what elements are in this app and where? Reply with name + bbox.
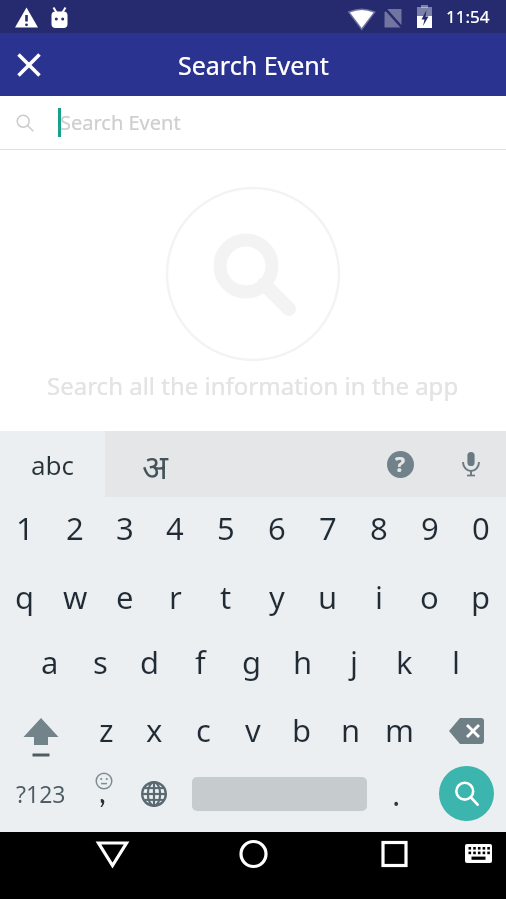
button[interactable]: 4 <box>150 497 200 564</box>
button[interactable]: 9 <box>404 497 455 564</box>
staticText: 5 <box>217 507 235 549</box>
button[interactable]: 1 <box>0 497 50 564</box>
button[interactable]: u <box>302 564 353 631</box>
button[interactable]: Space <box>184 760 367 827</box>
staticText: 4 <box>166 507 184 549</box>
button[interactable]: Close <box>4 40 53 89</box>
button[interactable]: 3 <box>100 497 150 564</box>
staticText: s <box>93 641 108 683</box>
staticText: ?123 <box>16 778 66 809</box>
button[interactable]: l <box>430 631 481 698</box>
staticText: w <box>63 576 88 618</box>
button[interactable]: . <box>367 760 426 827</box>
button[interactable]: g <box>226 631 277 698</box>
staticText: a <box>41 641 59 683</box>
button[interactable]: a <box>25 631 75 698</box>
button[interactable]: ?123 <box>0 760 82 827</box>
button[interactable]: Help <box>373 431 427 497</box>
button[interactable]: abc <box>0 431 105 497</box>
staticText: j <box>350 641 358 683</box>
staticText: 3 <box>116 507 134 549</box>
button[interactable]: c <box>179 698 228 765</box>
staticText: 11:54 <box>446 5 490 28</box>
staticText: o <box>420 576 439 618</box>
button[interactable]: n <box>326 698 375 765</box>
button[interactable]: 7 <box>302 497 353 564</box>
button[interactable]: h <box>277 631 328 698</box>
button[interactable]: q <box>0 564 50 631</box>
staticText: t <box>220 576 232 618</box>
staticText: 8 <box>370 507 388 549</box>
staticText: d <box>140 641 160 683</box>
button[interactable]: d <box>125 631 175 698</box>
staticText: Search all the information in the app <box>47 369 459 402</box>
button[interactable]: 2 <box>50 497 100 564</box>
button[interactable]: m <box>375 698 424 765</box>
button[interactable]: 0 <box>455 497 506 564</box>
staticText: 1 <box>16 507 34 549</box>
staticText: 9 <box>421 507 439 549</box>
staticText: m <box>385 709 414 751</box>
staticText: k <box>396 641 413 683</box>
button[interactable]: Voice input <box>443 431 499 497</box>
button[interactable]: y <box>251 564 302 631</box>
button[interactable]: i <box>353 564 404 631</box>
button[interactable]: Search <box>426 760 506 827</box>
button[interactable]: Change keyboard <box>452 832 506 899</box>
staticText: c <box>196 709 211 751</box>
button[interactable]: r <box>150 564 200 631</box>
button[interactable]: k <box>379 631 430 698</box>
button[interactable]: Home <box>219 832 288 899</box>
staticText: u <box>318 576 338 618</box>
button[interactable]: s <box>75 631 125 698</box>
staticText: e <box>116 576 134 618</box>
button[interactable]: अ <box>105 431 373 497</box>
staticText: i <box>375 576 383 618</box>
staticText: v <box>245 709 261 751</box>
staticText: 6 <box>268 507 286 549</box>
button[interactable]: Comma and emoji <box>82 760 123 827</box>
button[interactable]: 6 <box>251 497 302 564</box>
button[interactable]: t <box>200 564 251 631</box>
staticText: x <box>146 709 163 751</box>
staticText: b <box>292 709 312 751</box>
staticText: f <box>195 641 206 683</box>
button[interactable]: p <box>455 564 506 631</box>
staticText: 7 <box>319 507 337 549</box>
button[interactable]: 5 <box>200 497 251 564</box>
button[interactable]: Back <box>78 832 147 899</box>
button[interactable]: v <box>228 698 277 765</box>
staticText: y <box>269 576 285 618</box>
staticText: Search Event <box>60 109 181 136</box>
staticText: z <box>99 709 114 751</box>
staticText: n <box>341 709 361 751</box>
staticText: 2 <box>66 507 84 549</box>
staticText: h <box>293 641 313 683</box>
staticText: r <box>169 576 182 618</box>
staticText: 0 <box>472 507 490 549</box>
staticText: l <box>452 641 460 683</box>
button[interactable]: f <box>175 631 226 698</box>
button[interactable]: 8 <box>353 497 404 564</box>
button[interactable]: o <box>404 564 455 631</box>
button[interactable]: x <box>130 698 179 765</box>
staticText: p <box>471 576 491 618</box>
staticText: . <box>392 773 401 815</box>
button[interactable]: z <box>82 698 130 765</box>
button[interactable]: Recent apps <box>360 832 429 899</box>
staticText: Search Event <box>178 48 329 82</box>
staticText: अ <box>142 443 168 489</box>
button[interactable]: e <box>100 564 150 631</box>
staticText: abc <box>31 447 75 482</box>
button[interactable]: Shift <box>0 698 82 765</box>
staticText: ? <box>395 451 406 477</box>
staticText: q <box>15 576 35 618</box>
button[interactable]: b <box>277 698 326 765</box>
staticText: g <box>242 641 262 683</box>
button[interactable]: w <box>50 564 100 631</box>
button[interactable]: j <box>328 631 379 698</box>
button[interactable]: Change language <box>123 760 184 827</box>
button[interactable]: Backspace <box>424 698 506 765</box>
